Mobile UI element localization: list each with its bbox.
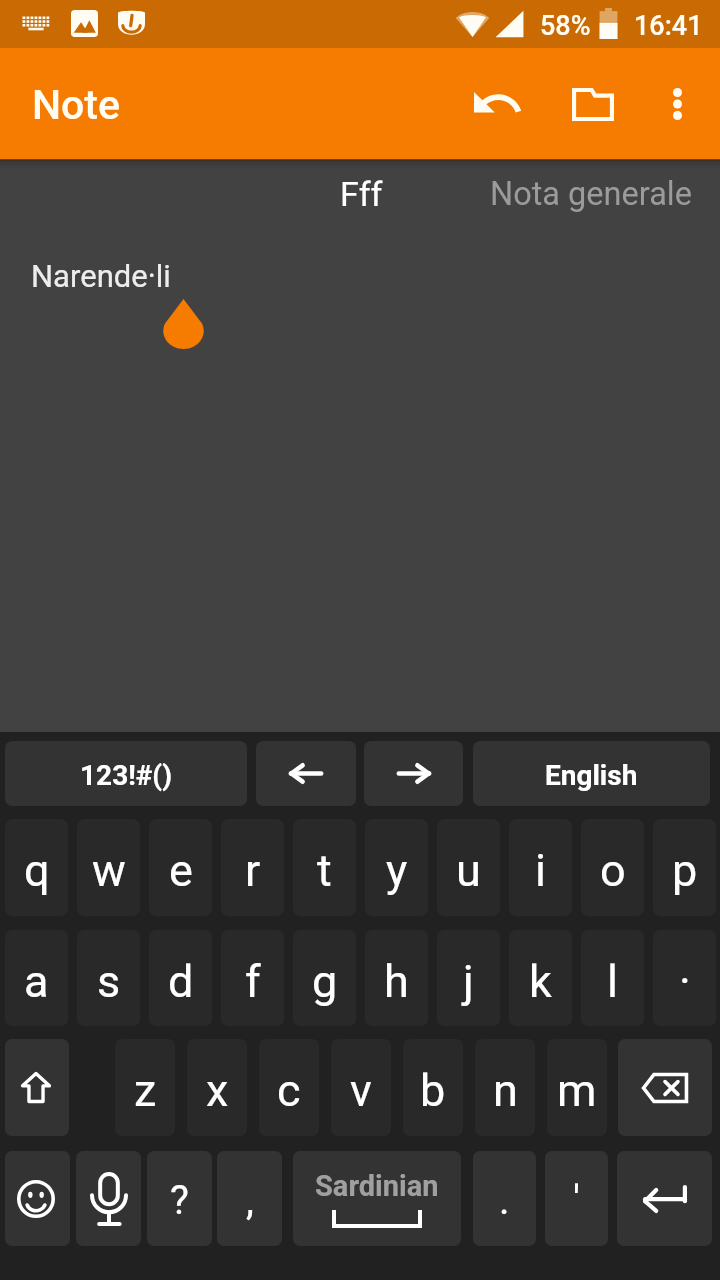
staticText: Fff: [340, 174, 383, 214]
button[interactable]: More options: [641, 48, 713, 160]
button[interactable]: h: [365, 930, 428, 1026]
button[interactable]: e: [149, 819, 212, 916]
staticText: h: [384, 955, 409, 1008]
button[interactable]: Sardinian: [293, 1151, 461, 1246]
staticText: j: [463, 955, 474, 1008]
staticText: p: [672, 844, 698, 897]
staticText: m: [557, 1064, 597, 1117]
button[interactable]: u: [437, 819, 500, 916]
staticText: 58%: [540, 10, 591, 42]
other: Move cursor left: [289, 763, 323, 784]
button[interactable]: .: [473, 1151, 536, 1246]
staticText: v: [350, 1064, 372, 1117]
other: Shift: [20, 1071, 52, 1104]
staticText: o: [600, 844, 626, 897]
staticText: ·: [679, 955, 691, 1008]
button[interactable]: n: [475, 1039, 535, 1136]
staticText: l: [607, 955, 618, 1008]
other: Backspace: [641, 1072, 689, 1104]
staticText: English: [545, 759, 638, 792]
button[interactable]: 123!#(): [5, 741, 247, 806]
staticText: ,: [246, 1177, 254, 1224]
button[interactable]: b: [403, 1039, 463, 1136]
staticText: b: [420, 1064, 446, 1117]
staticText: f: [245, 955, 261, 1008]
button[interactable]: z: [115, 1039, 175, 1136]
button[interactable]: Move cursor left: [256, 741, 356, 806]
button[interactable]: Undo: [448, 48, 544, 160]
staticText: k: [529, 955, 552, 1008]
staticText: s: [97, 955, 121, 1008]
staticText: a: [24, 955, 49, 1008]
button[interactable]: q: [5, 819, 68, 916]
staticText: e: [169, 844, 193, 897]
staticText: g: [312, 955, 338, 1008]
button[interactable]: Fff: [322, 166, 400, 222]
staticText: n: [493, 1064, 518, 1117]
button[interactable]: j: [437, 930, 500, 1026]
staticText: d: [168, 955, 194, 1008]
staticText: i: [535, 844, 546, 897]
staticText: r: [245, 844, 261, 897]
other: Enter: [643, 1185, 687, 1213]
staticText: t: [317, 844, 332, 897]
button[interactable]: f: [221, 930, 284, 1026]
button[interactable]: r: [221, 819, 284, 916]
other: Move cursor right: [397, 763, 431, 784]
staticText: z: [134, 1064, 157, 1117]
button[interactable]: m: [547, 1039, 607, 1136]
staticText: Nota generale: [490, 175, 692, 213]
button[interactable]: Open folder: [545, 48, 641, 160]
staticText: 123!#(): [80, 759, 172, 792]
staticText: y: [386, 844, 408, 897]
staticText: w: [92, 844, 126, 897]
button[interactable]: p: [653, 819, 716, 916]
button[interactable]: Move cursor right: [364, 741, 463, 806]
staticText: c: [277, 1064, 301, 1117]
button[interactable]: g: [293, 930, 356, 1026]
button[interactable]: Emoji: [5, 1151, 70, 1246]
button[interactable]: v: [331, 1039, 391, 1136]
button[interactable]: ': [545, 1151, 608, 1246]
staticText: ': [573, 1177, 580, 1224]
button[interactable]: s: [77, 930, 140, 1026]
button[interactable]: a: [5, 930, 68, 1026]
other: Emoji: [17, 1180, 55, 1218]
button[interactable]: i: [509, 819, 572, 916]
button[interactable]: o: [581, 819, 644, 916]
button[interactable]: English: [473, 741, 710, 806]
button[interactable]: ·: [653, 930, 716, 1026]
button[interactable]: Enter: [617, 1151, 712, 1246]
button[interactable]: y: [365, 819, 428, 916]
button[interactable]: ,: [217, 1151, 282, 1246]
other: Voice input: [90, 1172, 128, 1226]
button[interactable]: w: [77, 819, 140, 916]
staticText: q: [24, 844, 50, 897]
button[interactable]: x: [187, 1039, 247, 1136]
staticText: 16:41: [634, 10, 703, 42]
button[interactable]: d: [149, 930, 212, 1026]
button[interactable]: k: [509, 930, 572, 1026]
staticText: Note: [32, 81, 120, 129]
button[interactable]: Voice input: [76, 1151, 141, 1246]
button[interactable]: ?: [147, 1151, 212, 1246]
button[interactable]: Shift: [5, 1039, 69, 1136]
staticText: Sardinian: [315, 1169, 439, 1203]
button[interactable]: Nota generale: [478, 166, 704, 222]
staticText: u: [456, 844, 481, 897]
staticText: ?: [170, 1177, 189, 1224]
staticText: .: [499, 1177, 510, 1224]
staticText: x: [206, 1064, 229, 1117]
button[interactable]: Backspace: [618, 1039, 712, 1136]
staticText: Narende·li: [31, 258, 171, 294]
button[interactable]: l: [581, 930, 644, 1026]
button[interactable]: c: [259, 1039, 319, 1136]
button[interactable]: t: [293, 819, 356, 916]
